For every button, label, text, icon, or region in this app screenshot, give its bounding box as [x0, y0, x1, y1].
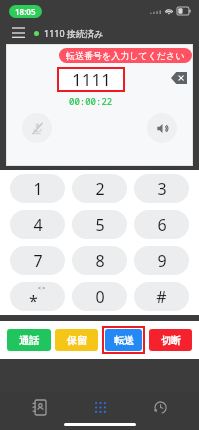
staticText: 0 — [95, 286, 105, 308]
staticText: 00:00:22 — [69, 95, 113, 107]
button[interactable]: * — [10, 282, 65, 311]
button[interactable]: 3 — [134, 174, 189, 203]
button[interactable]: 9 — [134, 246, 189, 275]
staticText: * — [29, 290, 38, 311]
staticText: 7 — [33, 250, 43, 272]
button[interactable]: # — [134, 282, 189, 311]
button[interactable]: 転送 — [105, 329, 142, 351]
staticText: 2 — [95, 178, 105, 200]
button[interactable]: Menu — [8, 23, 28, 43]
button[interactable]: Call history — [138, 392, 182, 422]
staticText: 保留 — [67, 334, 87, 347]
staticText: < > — [38, 285, 46, 292]
button[interactable]: Contacts — [17, 392, 61, 422]
staticText: 9 — [157, 250, 167, 272]
button[interactable]: 2 — [72, 174, 127, 203]
button[interactable]: 7 — [10, 246, 65, 275]
staticText: 5 — [95, 214, 105, 236]
staticText: 18:05 — [15, 6, 36, 17]
button[interactable]: 1111 — [57, 67, 125, 92]
button[interactable]: 5 — [72, 210, 127, 239]
staticText: 1 — [33, 178, 43, 200]
button[interactable]: 6 — [134, 210, 189, 239]
staticText: 3 — [157, 178, 167, 200]
button[interactable]: 通話 — [7, 329, 51, 351]
staticText: 転送番号を入力してください — [66, 50, 185, 61]
button[interactable]: 1 — [10, 174, 65, 203]
staticText: 4 — [33, 214, 43, 236]
button[interactable]: 切断 — [149, 329, 192, 351]
staticText: 1111 — [72, 68, 111, 91]
button[interactable]: Speaker — [147, 113, 177, 143]
staticText: 1110 接続済み — [44, 27, 104, 39]
button[interactable]: Mute — [22, 113, 52, 143]
staticText: 転送 — [114, 334, 134, 347]
button[interactable]: Keypad — [78, 392, 122, 422]
button[interactable]: 0 — [72, 282, 127, 311]
button[interactable]: Backspace — [170, 71, 187, 84]
staticText: 切断 — [161, 334, 181, 347]
staticText: 8 — [95, 250, 105, 272]
staticText: # — [156, 286, 167, 308]
staticText: 6 — [157, 214, 167, 236]
button[interactable]: 保留 — [55, 329, 98, 351]
staticText: 通話 — [19, 334, 39, 347]
button[interactable]: 8 — [72, 246, 127, 275]
button[interactable]: 4 — [10, 210, 65, 239]
